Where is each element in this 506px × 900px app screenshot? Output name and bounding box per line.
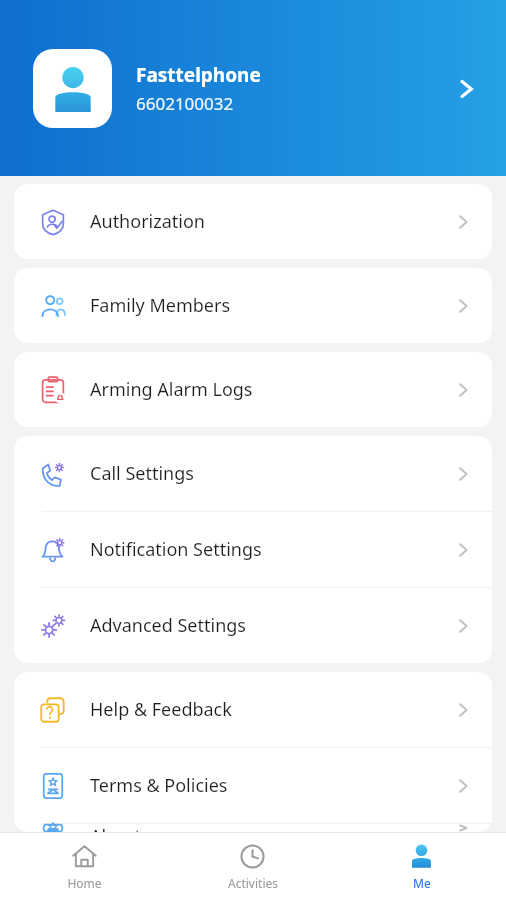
staticText: Activities <box>228 875 278 891</box>
staticText: Terms & Policies <box>90 773 228 798</box>
staticText: Me <box>413 875 431 891</box>
button[interactable]: Call Settings <box>14 436 492 511</box>
button[interactable]: Me <box>337 837 506 897</box>
staticText: 6602100032 <box>136 92 234 115</box>
button[interactable]: Terms & Policies <box>14 748 492 823</box>
button[interactable]: Notification Settings <box>14 512 492 587</box>
staticText: Arming Alarm Logs <box>90 377 253 402</box>
staticText: Home <box>67 875 102 891</box>
button[interactable]: Arming Alarm Logs <box>14 352 492 427</box>
staticText: Notification Settings <box>90 537 262 562</box>
button[interactable]: About <box>14 824 492 832</box>
button[interactable]: Fasttelphone <box>33 49 486 128</box>
button[interactable]: Authorization <box>14 184 492 259</box>
button[interactable]: Activities <box>168 837 337 897</box>
button[interactable]: Advanced Settings <box>14 588 492 663</box>
button[interactable]: Help & Feedback <box>14 672 492 747</box>
staticText: About <box>90 824 142 832</box>
staticText: Call Settings <box>90 461 194 486</box>
button[interactable]: Home <box>0 837 168 897</box>
staticText: Help & Feedback <box>90 697 232 722</box>
staticText: Advanced Settings <box>90 613 246 638</box>
staticText: Family Members <box>90 293 231 318</box>
other: Profile details <box>446 69 486 109</box>
staticText: Fasttelphone <box>136 62 261 88</box>
button[interactable]: Family Members <box>14 268 492 343</box>
staticText: Authorization <box>90 209 205 234</box>
